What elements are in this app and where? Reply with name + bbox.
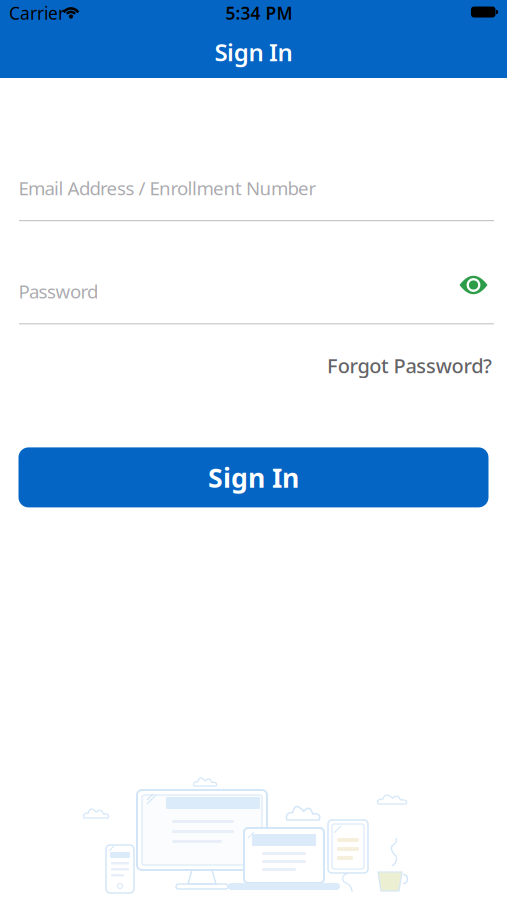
staticText: Forgot Password? <box>327 352 492 379</box>
staticText: Sign In <box>214 36 293 68</box>
staticText: Email Address / Enrollment Number <box>18 176 316 200</box>
button[interactable]: Sign In <box>18 447 488 507</box>
staticText: Carrier <box>9 1 65 24</box>
button[interactable]: Show password <box>459 276 487 294</box>
staticText: 5:34 PM <box>225 1 292 24</box>
button[interactable]: Password <box>0 279 507 324</box>
button[interactable]: Email Address / Enrollment Number <box>0 176 507 221</box>
staticText: Password <box>18 279 98 304</box>
staticText: Sign In <box>208 460 299 495</box>
button[interactable]: Forgot Password? <box>327 352 492 379</box>
